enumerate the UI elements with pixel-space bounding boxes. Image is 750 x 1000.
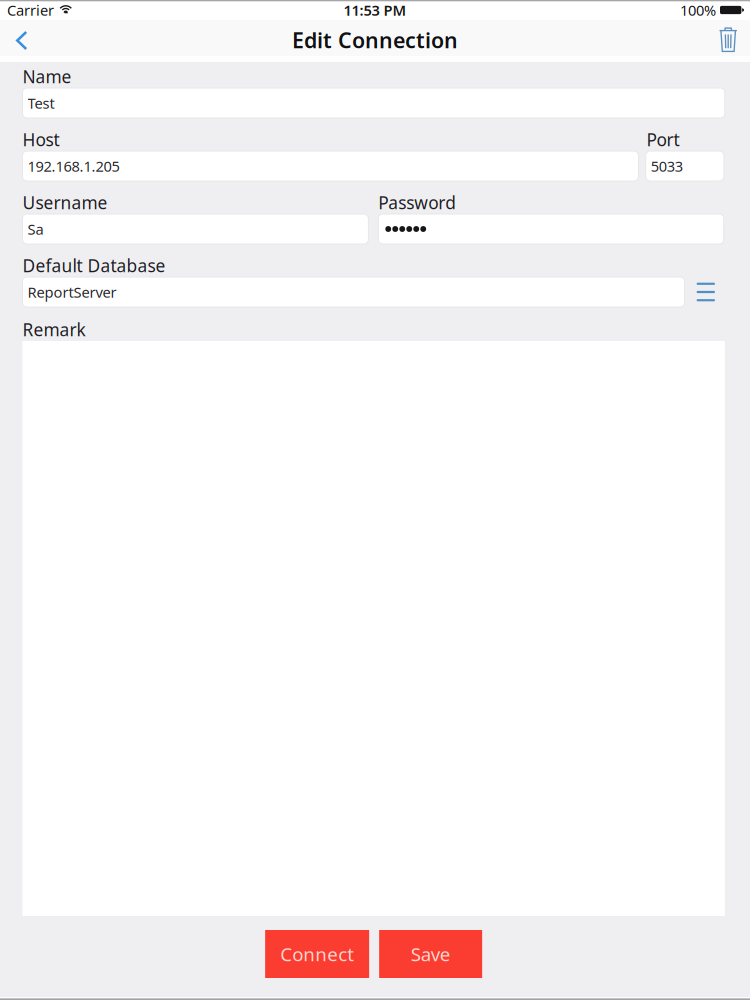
staticText: Password [378,191,456,214]
button[interactable]: Back [0,20,43,56]
button[interactable]: Connect [265,930,369,978]
button[interactable]: Username [22,214,368,244]
staticText: Name [22,65,71,88]
staticText: Default Database [22,254,165,277]
staticText: 100% [680,0,716,20]
staticText: 11:53 PM [343,0,406,20]
button[interactable]: Host [22,151,638,181]
button[interactable]: Delete connection [703,20,750,56]
staticText: Host [22,128,59,151]
button[interactable]: Name [22,88,725,118]
button[interactable]: Browse databases [685,277,725,307]
staticText: 192.168.1.205 [27,156,119,176]
button[interactable]: Save [379,930,482,978]
button[interactable]: Port [646,151,724,181]
staticText: Edit Connection [292,26,458,54]
staticText: Sa [27,219,43,239]
button[interactable]: Default Database [22,277,685,307]
staticText: 5033 [651,156,683,176]
staticText: ReportServer [27,282,116,302]
staticText: Port [647,128,680,151]
staticText: Save [411,942,451,966]
staticText: Test [27,93,54,113]
staticText: Carrier [7,0,54,20]
staticText: Remark [22,318,85,341]
staticText: Username [22,191,107,214]
staticText: Connect [280,942,354,966]
button[interactable]: Password [378,214,724,244]
